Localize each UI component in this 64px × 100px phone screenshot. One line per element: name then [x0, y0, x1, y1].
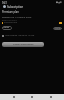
staticText: Change plan: [2, 26, 12, 30]
button[interactable]: Profile: [3, 5, 6, 8]
button[interactable]: Change plan: [2, 26, 12, 30]
staticText: Subscription: [7, 5, 24, 9]
staticText: ● ▲ ▮: [56, 1, 62, 4]
staticText: Billed monthly: [2, 19, 17, 22]
staticText: Premium plan: [2, 10, 19, 13]
staticText: Next charge · €9.99 on 14 Mar: [5, 34, 35, 37]
staticText: 9:41: [2, 1, 7, 4]
staticText: Renews on 14 March 2025: [2, 15, 32, 18]
button[interactable]: Recent apps: [46, 94, 56, 100]
button[interactable]: Invoices: [53, 27, 62, 30]
staticText: Payment due: [4, 21, 18, 24]
staticText: Cancel subscription: [13, 43, 34, 46]
button[interactable]: Back: [9, 94, 19, 100]
staticText: Invoices: [54, 27, 62, 30]
button[interactable]: Cancel subscription: [2, 42, 44, 47]
button[interactable]: Home: [27, 94, 37, 100]
